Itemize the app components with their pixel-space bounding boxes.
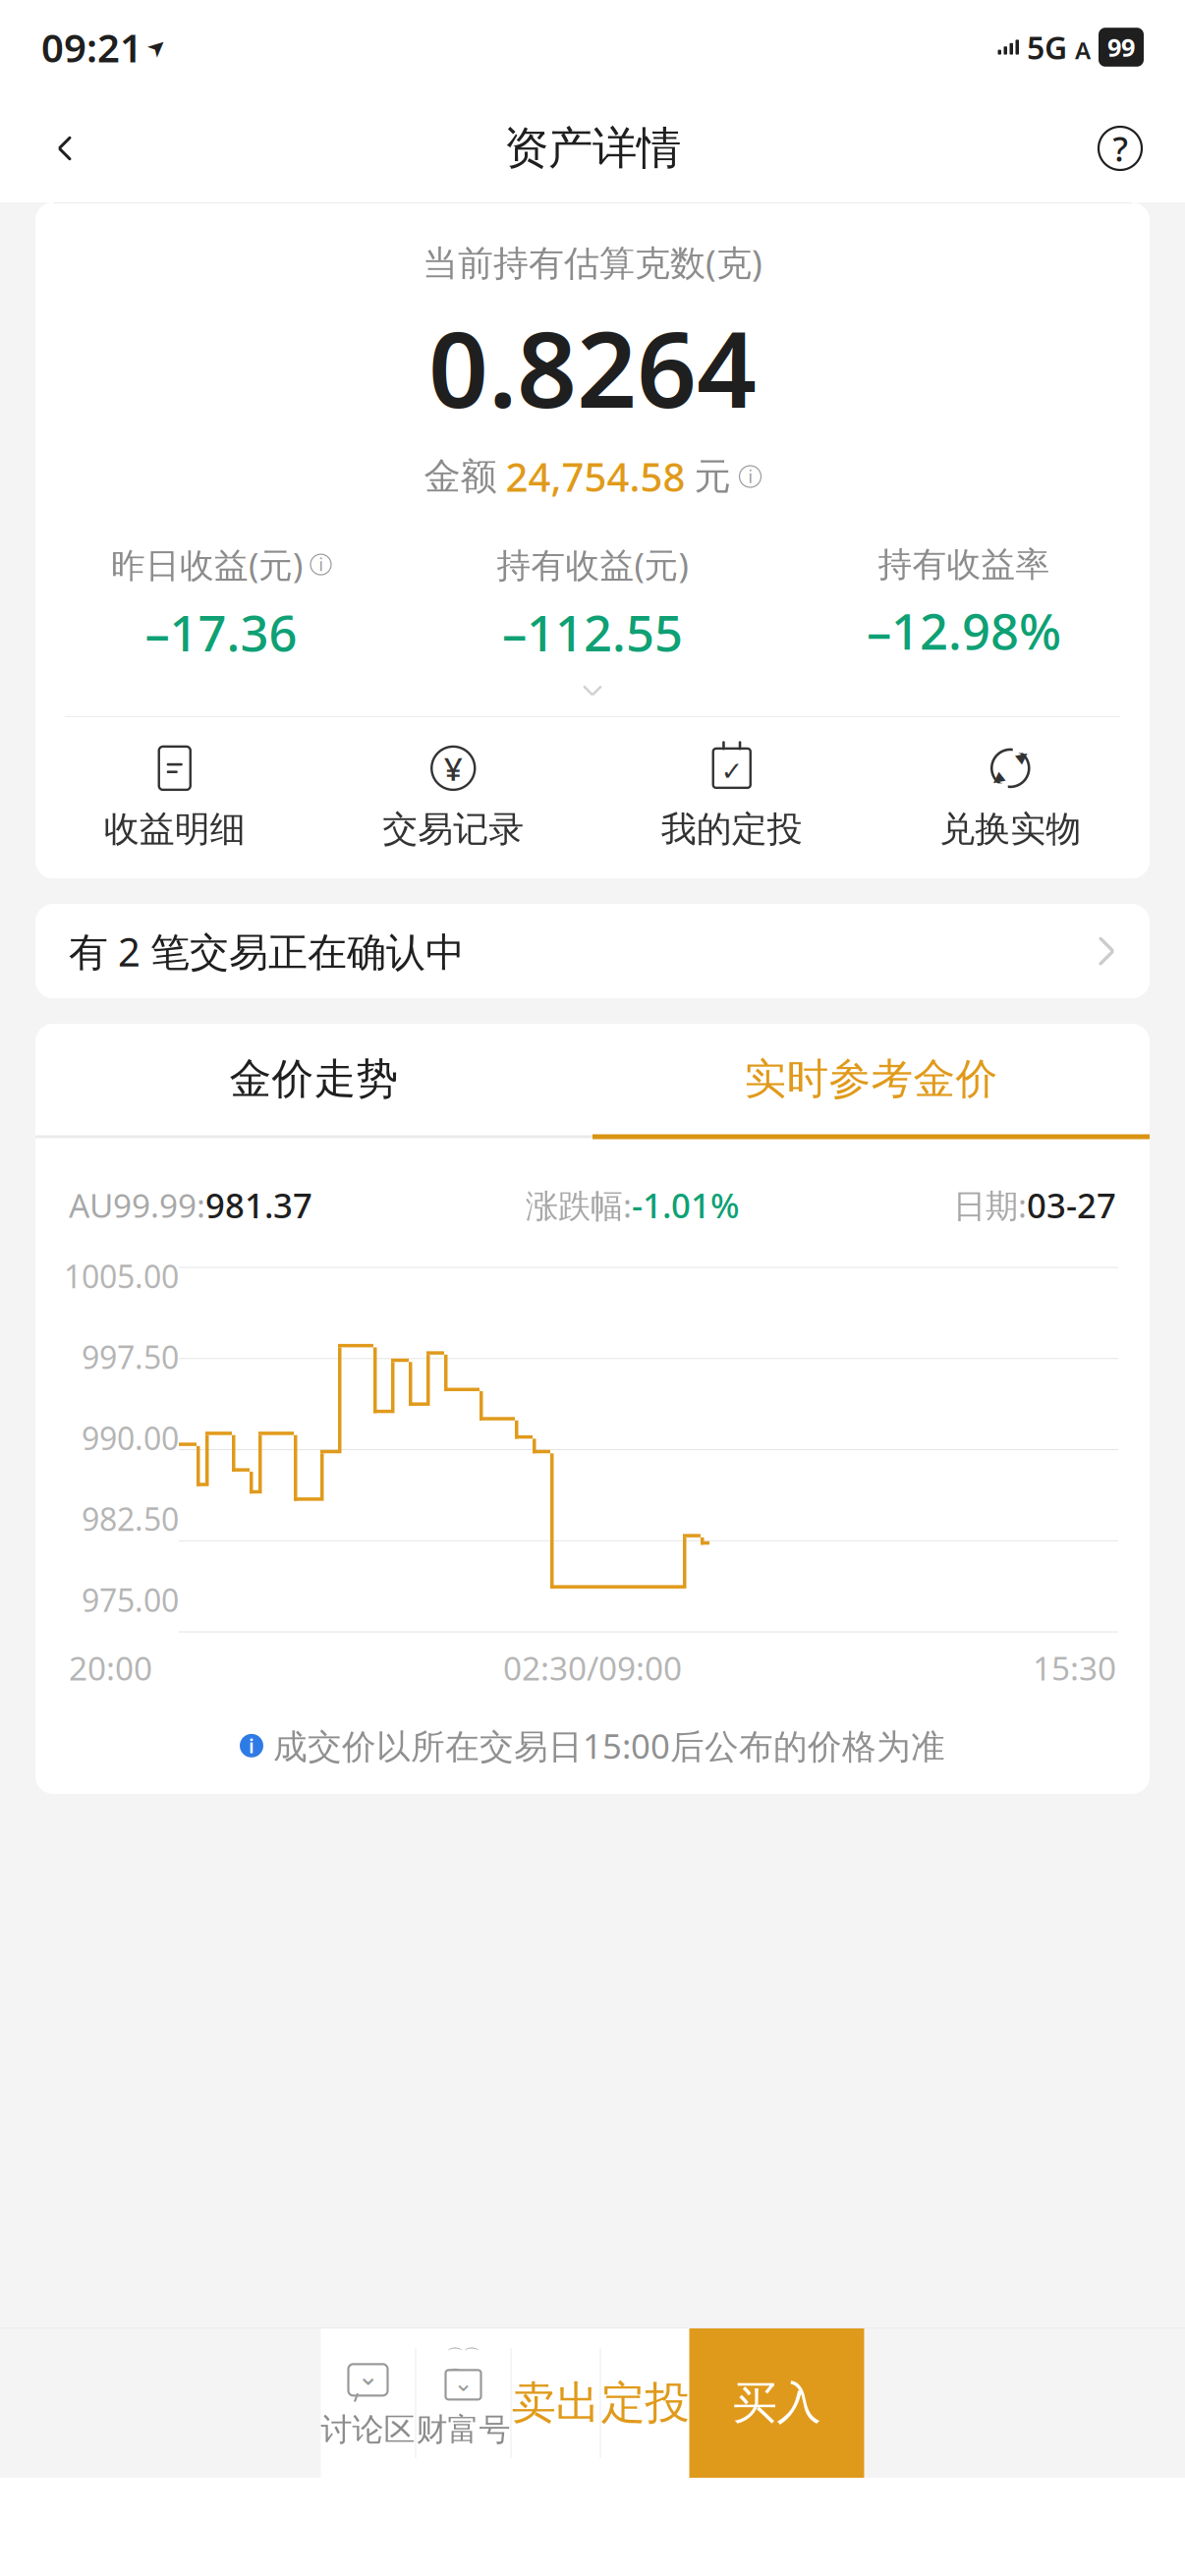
staticText: ⌄ <box>453 2369 473 2396</box>
staticText: 02:30/09:00 <box>503 1646 682 1690</box>
staticText: 997.50 <box>82 1336 179 1378</box>
staticText: 金额 <box>424 454 497 499</box>
staticText: 成交价以所在交易日15:00后公布的价格为准 <box>273 1723 945 1768</box>
staticText: 兑换实物 <box>940 807 1081 851</box>
staticText: 5G <box>1027 26 1067 68</box>
staticText: 实时参考金价 <box>744 1053 998 1105</box>
staticText: 24,754.58 <box>506 450 685 503</box>
staticText: ¥ <box>444 746 463 790</box>
staticText: 15:30 <box>1033 1646 1116 1690</box>
staticText: A <box>1075 34 1091 66</box>
staticText: ▴ <box>991 768 1002 794</box>
staticText: 20:00 <box>69 1646 152 1690</box>
button[interactable]: ▴ <box>871 723 1150 873</box>
staticText: 定投 <box>601 2376 689 2430</box>
staticText: 资产详情 <box>504 121 681 176</box>
button[interactable]: 帮助 <box>1085 113 1156 184</box>
staticText: 99 <box>1107 31 1135 64</box>
staticText: ? <box>1113 126 1128 171</box>
staticText: 03-27 <box>1027 1182 1116 1228</box>
staticText: 975.00 <box>82 1579 179 1621</box>
staticText: 09:21 <box>41 21 142 73</box>
staticText: 卖出 <box>511 2376 600 2430</box>
button[interactable]: 收益明细 <box>35 723 314 873</box>
button[interactable]: 金额说明 <box>739 466 761 487</box>
button[interactable]: 有 2 笔交易正在确认中 <box>35 904 1150 998</box>
staticText: 持有收益率 <box>878 544 1050 585</box>
staticText: 我的定投 <box>661 807 803 851</box>
staticText: 收益明细 <box>104 807 245 851</box>
staticText: 0.8264 <box>428 297 757 437</box>
staticText: 交易记录 <box>382 807 524 851</box>
staticText: –17.36 <box>145 599 297 665</box>
button[interactable]: 定投 <box>601 2328 689 2478</box>
staticText: 当前持有估算克数(克) <box>423 239 762 286</box>
button[interactable]: 实时参考金价 <box>592 1024 1150 1134</box>
staticText: 有 2 笔交易正在确认中 <box>69 925 465 977</box>
staticText: ⌄ <box>357 2361 379 2391</box>
staticText: 昨日收益(元) <box>111 542 303 587</box>
staticText: 981.37 <box>205 1182 312 1228</box>
staticText: 990.00 <box>82 1417 179 1459</box>
staticText: –112.55 <box>502 599 683 665</box>
button[interactable]: 卖出 <box>511 2328 600 2478</box>
staticText: 持有收益(元) <box>497 542 688 587</box>
button[interactable]: ✓ <box>592 723 871 873</box>
staticText: –12.98% <box>867 597 1061 663</box>
staticText: 买入 <box>733 2376 821 2430</box>
button[interactable]: 买入 <box>689 2328 864 2478</box>
staticText: 讨论区 <box>321 2410 415 2449</box>
staticText: 1005.00 <box>64 1255 179 1297</box>
staticText: ➤ <box>147 34 166 60</box>
staticText: AU99.99: <box>69 1183 205 1227</box>
staticText: i <box>249 1733 254 1759</box>
staticText: -1.01% <box>632 1182 740 1228</box>
staticText: ✓ <box>721 756 743 786</box>
staticText: i <box>319 553 323 576</box>
staticText: 涨跌幅: <box>526 1183 632 1227</box>
button[interactable]: 金价走势 <box>35 1024 592 1134</box>
staticText: 982.50 <box>82 1498 179 1540</box>
staticText: 金价走势 <box>229 1053 398 1105</box>
staticText: ⌒⌒⌒ <box>447 2345 480 2387</box>
button[interactable]: ⌄ <box>416 2328 510 2478</box>
staticText: 日期: <box>953 1183 1027 1227</box>
button[interactable]: ⌄ <box>321 2328 415 2478</box>
staticText: i <box>748 465 752 488</box>
staticText: 元 <box>694 454 731 499</box>
staticText: ▴ <box>1019 743 1030 768</box>
button[interactable]: 返回 <box>29 113 100 184</box>
staticText: 财富号 <box>416 2410 510 2449</box>
button[interactable]: ¥ <box>314 723 592 873</box>
